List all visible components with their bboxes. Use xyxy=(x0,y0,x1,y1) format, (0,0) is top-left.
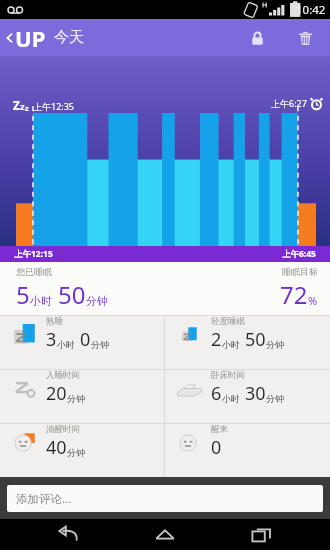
staticText: 50 xyxy=(58,278,86,311)
staticText: Z xyxy=(13,97,20,113)
staticText: 小时 xyxy=(222,339,240,350)
staticText: 入睡时间 xyxy=(46,370,80,381)
staticText: 2 xyxy=(211,327,222,352)
button[interactable]: Recents xyxy=(234,519,290,550)
button[interactable]: 添加评论... xyxy=(7,485,323,512)
button[interactable]: 卧床时间 xyxy=(165,370,330,406)
staticText: 上午6:45 xyxy=(282,248,316,260)
button[interactable]: Home xyxy=(137,519,193,550)
staticText: 分钟 xyxy=(67,447,85,458)
staticText: UP xyxy=(15,23,46,53)
button[interactable]: Back xyxy=(41,519,97,550)
staticText: 50 xyxy=(245,327,266,352)
staticText: 小时 xyxy=(222,393,240,404)
button[interactable]: Delete xyxy=(288,21,322,55)
staticText: 您已睡眠 xyxy=(16,266,52,277)
staticText: 0 xyxy=(211,435,222,460)
staticText: 3 xyxy=(46,327,57,352)
staticText: 上午6:27 xyxy=(271,97,307,109)
staticText: 卧床时间 xyxy=(211,370,245,381)
button[interactable]: 入睡时间 xyxy=(0,370,164,406)
staticText: 分钟 xyxy=(266,339,284,350)
staticText: 0 xyxy=(80,327,91,352)
staticText: 醒来 xyxy=(211,424,228,435)
staticText: 5 xyxy=(16,278,30,311)
staticText: z xyxy=(20,100,25,113)
staticText: 小时 xyxy=(30,294,52,308)
button[interactable]: 醒来 xyxy=(165,424,330,460)
staticText: 清醒时间 xyxy=(46,424,80,435)
staticText: 分钟 xyxy=(86,294,108,308)
staticText: 上午12:35 xyxy=(33,100,75,112)
button[interactable]: UP xyxy=(4,23,84,53)
staticText: 10:42 xyxy=(296,2,326,18)
staticText: 分钟 xyxy=(91,339,109,350)
staticText: 轻度睡眠 xyxy=(211,316,245,327)
staticText: 6 xyxy=(211,381,222,406)
staticText: 30 xyxy=(245,381,266,406)
staticText: 分钟 xyxy=(266,393,284,404)
button[interactable]: 清醒时间 xyxy=(0,424,164,460)
staticText: 上午12:15 xyxy=(14,248,53,260)
staticText: 今天 xyxy=(54,28,84,47)
button[interactable]: Lock xyxy=(240,21,274,55)
staticText: 小时 xyxy=(57,339,75,350)
staticText: 添加评论... xyxy=(16,491,72,507)
button[interactable]: 熟睡 xyxy=(0,316,164,352)
staticText: 40 xyxy=(46,435,67,460)
staticText: 分钟 xyxy=(67,393,85,404)
staticText: 20 xyxy=(46,381,67,406)
button[interactable]: 您已睡眠 xyxy=(0,262,330,315)
staticText: 72 xyxy=(280,278,308,311)
staticText: % xyxy=(308,293,318,308)
staticText: z xyxy=(25,103,29,113)
button[interactable]: 轻度睡眠 xyxy=(165,316,330,352)
staticText: 熟睡 xyxy=(46,316,63,327)
staticText: 睡眠目标 xyxy=(282,266,318,277)
